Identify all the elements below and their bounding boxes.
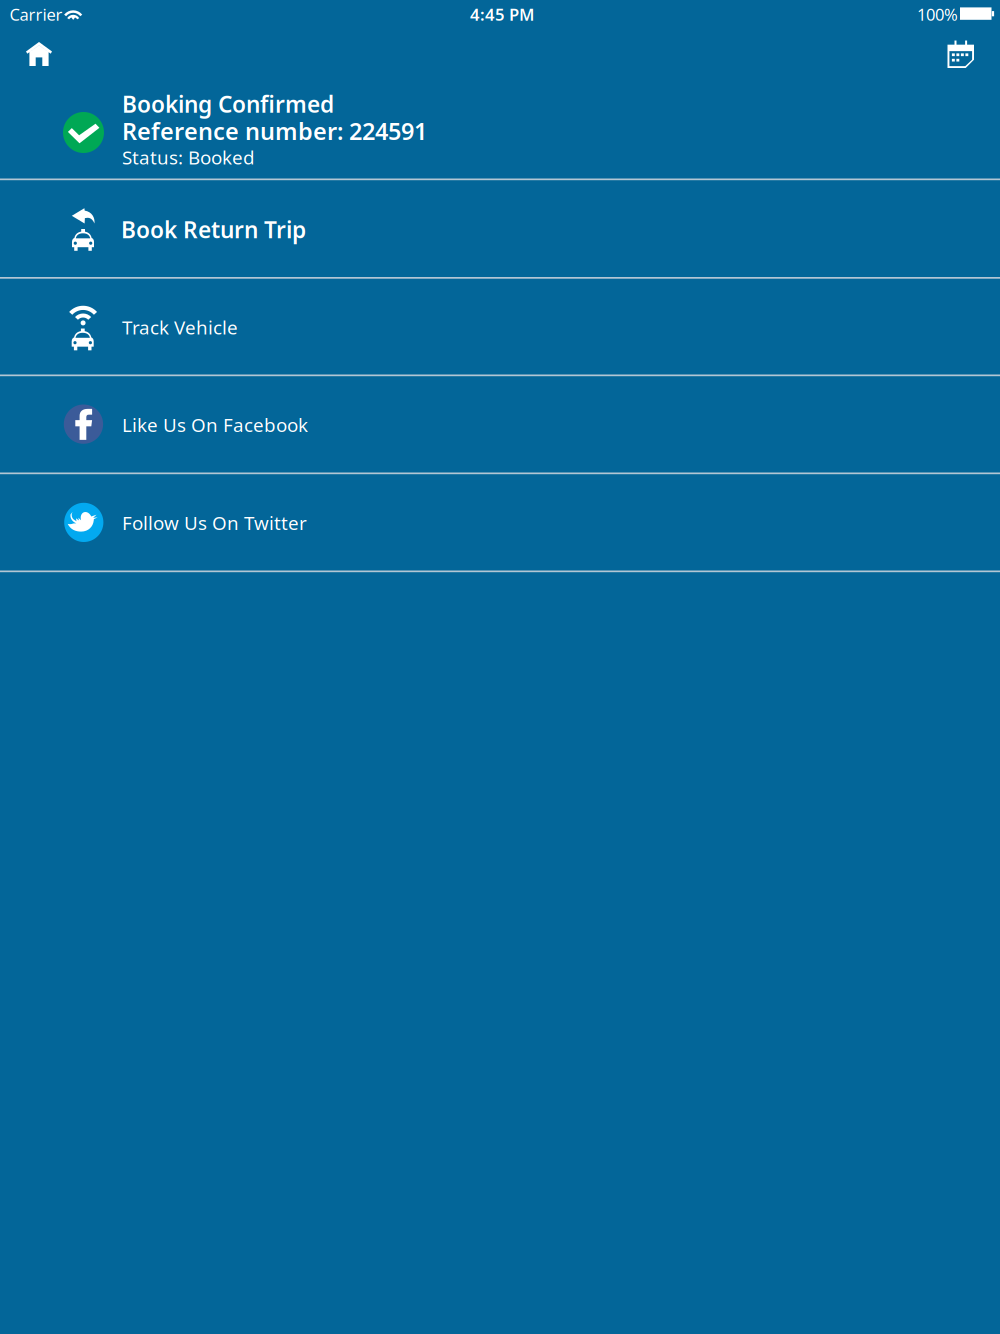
staticText: Status: Booked — [122, 144, 255, 170]
staticText: Track Vehicle — [122, 314, 238, 340]
staticText: Reference number: 224591 — [122, 115, 427, 147]
button[interactable]: Like Us On Facebook — [0, 376, 1000, 473]
button[interactable]: Book Return Trip — [0, 180, 1000, 278]
staticText: 4:45 PM — [470, 3, 534, 26]
staticText: Carrier — [9, 3, 62, 26]
staticText: Book Return Trip — [121, 214, 306, 245]
staticText: 100% — [917, 3, 958, 25]
staticText: Booking Confirmed — [122, 88, 334, 119]
staticText: Like Us On Facebook — [122, 412, 308, 438]
staticText: Follow Us On Twitter — [122, 510, 307, 536]
button[interactable]: Home — [0, 29, 72, 81]
button[interactable]: My Bookings — [926, 29, 998, 81]
button[interactable]: Follow Us On Twitter — [0, 474, 1000, 571]
button[interactable]: Track Vehicle — [0, 278, 1000, 375]
